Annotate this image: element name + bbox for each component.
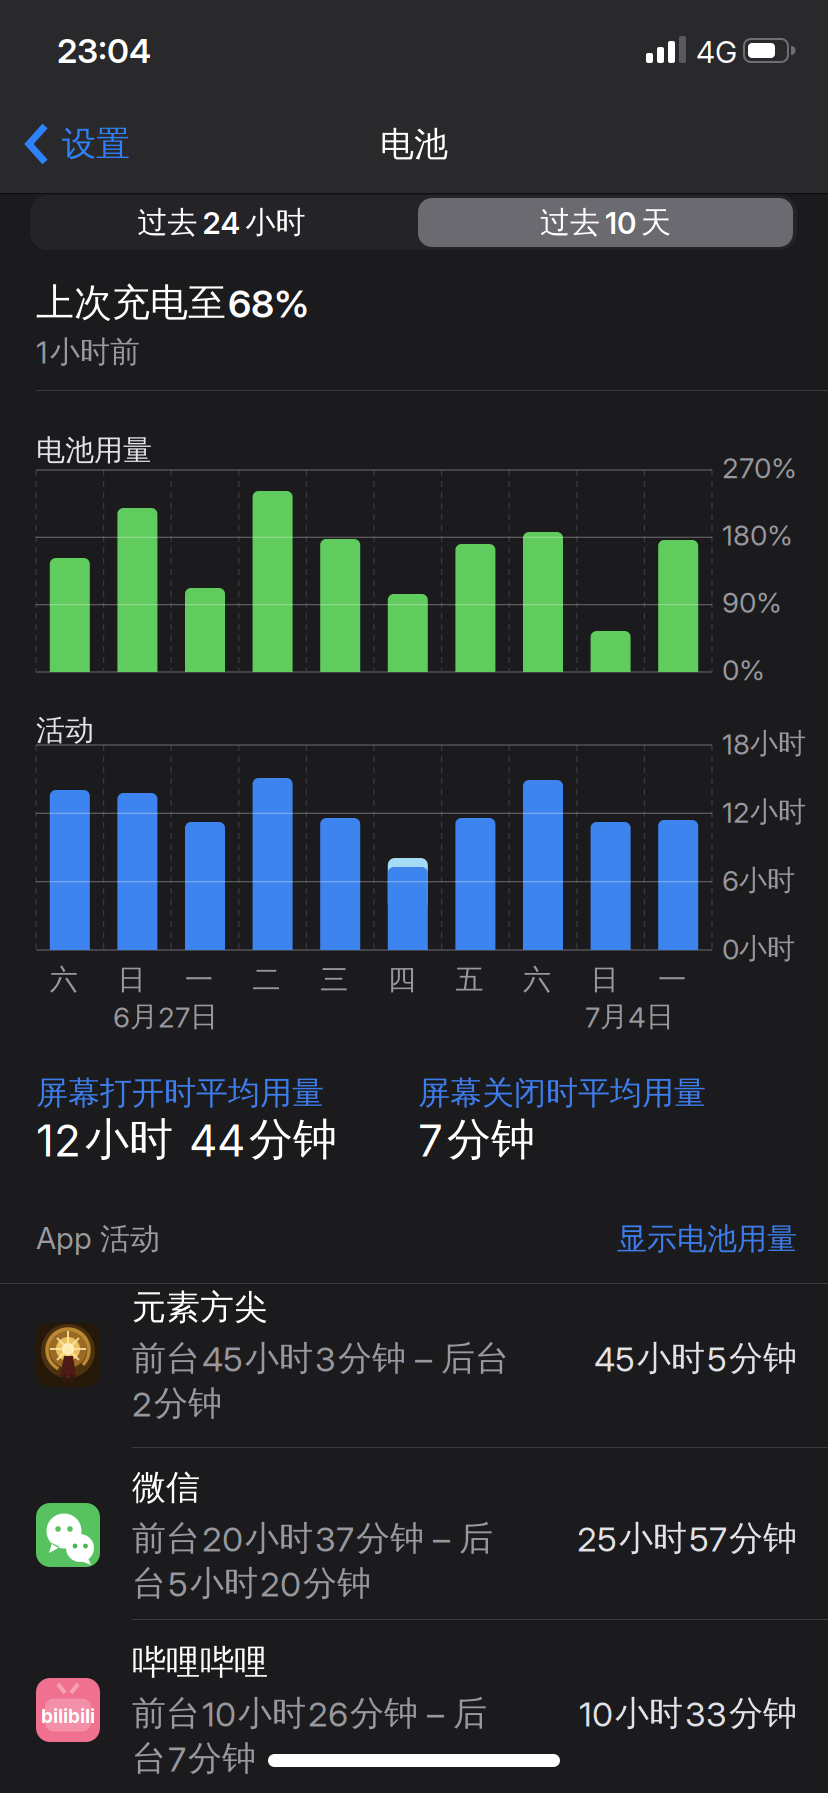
staticText: 90% (722, 586, 782, 620)
staticText: 12 小时 44 分钟 (36, 1112, 337, 1167)
staticText: 上次充电至 68% (36, 279, 309, 327)
staticText: 日 (591, 962, 619, 997)
staticText: bilibili (41, 1704, 95, 1727)
staticText: 4G (696, 34, 737, 70)
staticText: 25 小时 57 分钟 (577, 1517, 797, 1560)
staticText: 前台 10 小时 26 分钟 – 后 (132, 1692, 487, 1735)
staticText: 18小时 (722, 726, 806, 761)
staticText: 0% (722, 653, 765, 687)
staticText: 四 (388, 962, 416, 997)
staticText: 6小时 (722, 863, 795, 898)
staticText: 屏幕关闭时平均用量 (418, 1073, 706, 1113)
staticText: 五 (455, 962, 483, 997)
staticText: 一 (185, 962, 213, 997)
staticText: 活动 (36, 712, 94, 748)
staticText: 二 (253, 962, 281, 997)
button[interactable]: 过去 10 天 (418, 198, 793, 247)
staticText: 7 分钟 (418, 1112, 535, 1167)
staticText: 180% (722, 518, 793, 552)
staticText: 电池用量 (36, 432, 152, 468)
staticText: 哔哩哔哩 (132, 1641, 268, 1684)
staticText: 过去 10 天 (540, 204, 671, 241)
staticText: 一 (658, 962, 686, 997)
button[interactable]: 微信 (0, 1466, 828, 1632)
staticText: 设置 (62, 123, 130, 165)
staticText: 23:04 (57, 30, 151, 71)
staticText: 台 5 小时 20 分钟 (132, 1562, 371, 1605)
staticText: 屏幕打开时平均用量 (36, 1073, 324, 1113)
staticText: 元素方尖 (132, 1286, 268, 1329)
staticText: 12小时 (722, 794, 806, 830)
staticText: 六 (523, 962, 551, 997)
staticText: 电池 (380, 123, 448, 166)
staticText: 微信 (132, 1466, 200, 1509)
button[interactable]: 设置 (25, 122, 130, 166)
staticText: 6月27日 (113, 999, 218, 1034)
staticText: 270% (722, 451, 797, 485)
staticText: 7月4日 (585, 999, 674, 1034)
staticText: 前台 45 小时 3 分钟 – 后台 (132, 1337, 509, 1380)
staticText: 10 小时 33 分钟 (579, 1692, 797, 1735)
staticText: 日 (117, 962, 145, 997)
staticText: 三 (320, 962, 348, 997)
staticText: App 活动 (36, 1220, 160, 1258)
staticText: 0小时 (722, 931, 795, 966)
staticText: 前台 20 小时 37 分钟 – 后 (132, 1517, 493, 1560)
staticText: 台 7 分钟 (132, 1737, 256, 1780)
button[interactable]: 元素方尖 (0, 1286, 828, 1452)
staticText: 45 小时 5 分钟 (594, 1337, 797, 1380)
staticText: 过去 24 小时 (137, 204, 305, 241)
button[interactable]: 显示电池用量 (617, 1220, 797, 1258)
staticText: 1 小时前 (36, 333, 140, 371)
staticText: 2 分钟 (132, 1382, 222, 1425)
staticText: 显示电池用量 (617, 1220, 797, 1258)
staticText: 六 (50, 962, 78, 997)
button[interactable]: bilibili (0, 1641, 828, 1793)
button[interactable]: 过去 24 小时 (30, 195, 413, 250)
